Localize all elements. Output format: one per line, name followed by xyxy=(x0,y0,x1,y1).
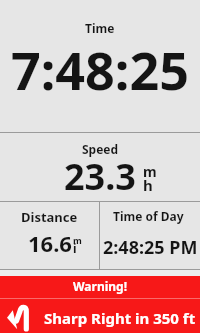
button[interactable]: Sharp right turn xyxy=(0,299,200,333)
staticText: 7:48:25 xyxy=(11,34,189,105)
staticText: Time of Day xyxy=(113,208,184,224)
button[interactable]: Distance xyxy=(0,202,99,269)
button[interactable]: Warning! xyxy=(0,276,200,298)
staticText: Time xyxy=(85,20,115,36)
staticText: 23.3 xyxy=(64,152,136,201)
staticText: i xyxy=(73,240,77,256)
staticText: Distance xyxy=(21,208,78,226)
button[interactable]: Time xyxy=(0,0,200,132)
other: Sharp right turn xyxy=(0,299,36,333)
staticText: Sharp Right in 350 ft xyxy=(44,308,196,328)
staticText: Speed xyxy=(82,141,119,157)
staticText: 16.6 xyxy=(28,228,72,258)
button[interactable]: Speed xyxy=(0,133,200,201)
button[interactable]: Time of Day xyxy=(100,202,200,269)
staticText: Warning! xyxy=(73,278,128,294)
staticText: h xyxy=(143,175,153,195)
staticText: 2:48:25 PM xyxy=(103,235,198,260)
staticText: m xyxy=(73,234,82,246)
staticText: m xyxy=(143,162,157,181)
